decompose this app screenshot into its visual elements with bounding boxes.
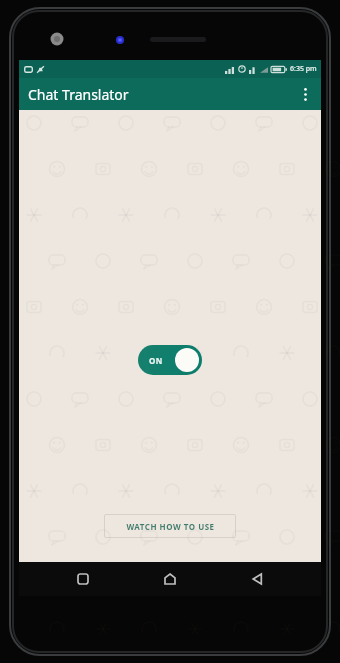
- staticText: ON: [149, 355, 163, 366]
- button[interactable]: WATCH HOW TO USE: [104, 514, 236, 538]
- staticText: 6:35 pm: [290, 64, 317, 74]
- staticText: Chat Translator: [28, 85, 129, 104]
- button[interactable]: Translator enabled, toggle off: [138, 345, 202, 375]
- staticText: WATCH HOW TO USE: [126, 521, 215, 532]
- button[interactable]: More options: [289, 78, 321, 110]
- button[interactable]: Home: [147, 562, 193, 596]
- button[interactable]: Recent apps: [60, 562, 106, 596]
- button[interactable]: Back: [234, 562, 280, 596]
